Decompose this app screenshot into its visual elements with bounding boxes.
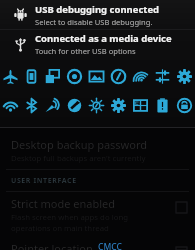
staticText: Connected as a media device xyxy=(35,32,172,45)
button[interactable]: Pointer location xyxy=(0,241,195,250)
button[interactable]: Toggle Strict mode enabled xyxy=(176,202,187,213)
staticText: USB debugging connected xyxy=(35,3,160,16)
button[interactable]: Sound settings xyxy=(151,62,173,91)
button[interactable]: Mobile data xyxy=(129,91,151,119)
button[interactable]: Multi window xyxy=(42,62,63,91)
staticText: Desktop full backups aren't currently pr… xyxy=(11,153,176,164)
staticText: Pointer location xyxy=(11,241,93,250)
button[interactable]: Location xyxy=(42,91,63,119)
staticText: Touch for other USB options xyxy=(35,46,136,56)
button[interactable]: Screenshot xyxy=(85,62,107,91)
staticText: Desktop backup password xyxy=(11,137,148,152)
button[interactable]: Do not disturb xyxy=(107,62,129,91)
button[interactable]: Screen lock xyxy=(173,91,195,119)
staticText: Select to disable USB debugging. xyxy=(35,17,153,27)
button[interactable]: Settings xyxy=(107,91,129,119)
button[interactable]: Strict mode enabled xyxy=(0,196,195,234)
staticText: operations on main thread xyxy=(11,223,109,234)
button[interactable]: Connected as a media device xyxy=(0,30,195,58)
button[interactable]: Auto brightness xyxy=(85,91,107,119)
button[interactable]: Airplane mode xyxy=(0,62,21,91)
button[interactable]: Auto rotate xyxy=(21,62,42,91)
button[interactable]: Settings xyxy=(173,62,195,91)
button[interactable]: Wi-Fi xyxy=(0,91,21,119)
button[interactable]: Sync xyxy=(63,91,85,119)
button[interactable]: USB debugging connected xyxy=(0,0,195,29)
button[interactable]: Hotspot xyxy=(129,62,151,91)
button[interactable]: Bluetooth xyxy=(21,91,42,119)
button[interactable]: Toggle Pointer location xyxy=(176,247,187,250)
button[interactable]: Screen record xyxy=(63,62,85,91)
staticText: USER INTERFACE xyxy=(11,176,77,186)
button[interactable]: Desktop backup password xyxy=(0,137,195,164)
staticText: Strict mode enabled xyxy=(11,196,116,211)
staticText: CMCC xyxy=(98,241,122,250)
button[interactable]: Battery saver xyxy=(151,91,173,119)
staticText: Flash screen when apps do long xyxy=(11,212,128,223)
